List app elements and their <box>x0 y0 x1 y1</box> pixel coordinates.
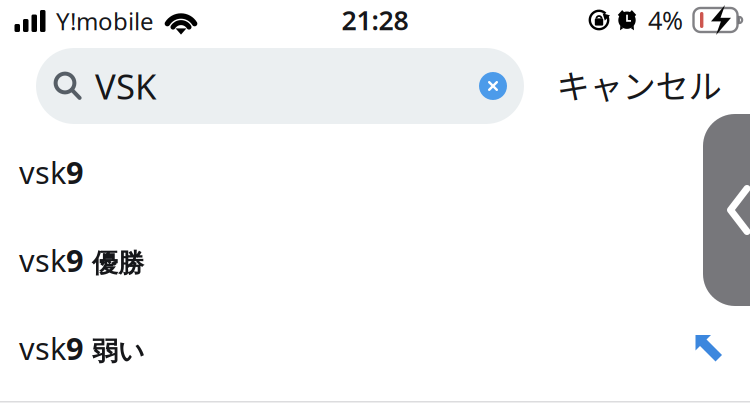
button[interactable]: キャンセル <box>544 48 734 120</box>
button[interactable]: vsk9 弱い <box>0 304 750 392</box>
button[interactable]: vsk9 <box>0 128 750 216</box>
button[interactable]: vsk9 優勝 <box>0 216 750 304</box>
staticText: VSK <box>95 63 156 109</box>
staticText: キャンセル <box>556 60 721 108</box>
staticText: vsk9 <box>19 152 84 192</box>
staticText: 4% <box>648 3 683 37</box>
staticText: vsk9 弱い <box>19 328 145 368</box>
staticText: 21:28 <box>341 2 408 38</box>
button[interactable]: Clear text <box>478 71 524 101</box>
staticText: vsk9 優勝 <box>19 240 144 280</box>
staticText: Y!mobile <box>56 5 154 37</box>
